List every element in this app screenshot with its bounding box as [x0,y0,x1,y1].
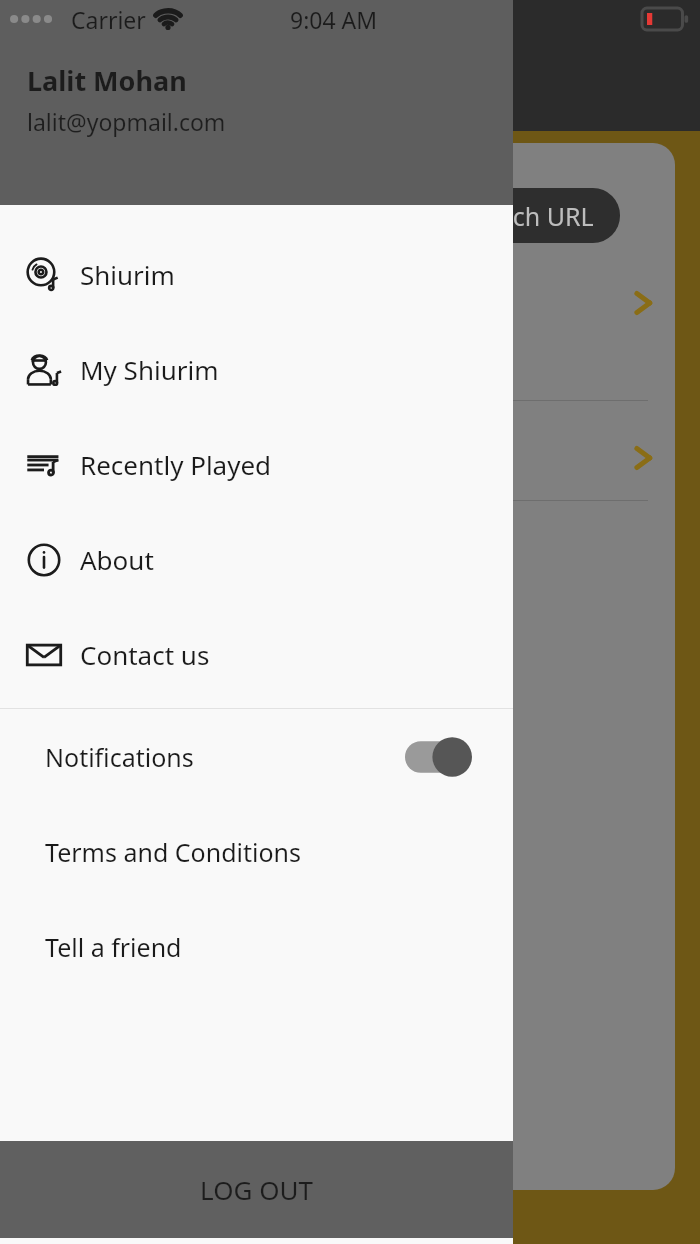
button[interactable]: Terms and Conditions [0,804,513,899]
staticText: 9:04 AM [290,4,378,35]
staticText: My Shiurim [80,352,219,387]
staticText: Lalit Mohan [27,62,187,99]
staticText: Contact us [80,637,210,672]
staticText: About [80,542,154,577]
button[interactable]: About [0,512,513,607]
button[interactable]: Open [20,253,675,353]
button[interactable]: Notifications [0,709,513,804]
button[interactable]: Notifications toggle [405,739,471,775]
button[interactable]: LOG OUT [0,1141,513,1238]
staticText: Recently Played [80,447,272,482]
other: Open [626,441,660,475]
button[interactable]: Open [20,408,675,508]
staticText: Terms and Conditions [45,835,302,869]
button[interactable]: Contact us [0,607,513,702]
staticText: lalit@yopmail.com [27,106,226,137]
staticText: Shiurim [80,257,175,292]
other: Open [626,286,660,320]
staticText: LOG OUT [200,1172,313,1207]
button[interactable]: Tell a friend [0,899,513,994]
staticText: Notifications [45,740,194,774]
button[interactable]: Recently Played [0,417,513,512]
button[interactable]: Search URL [320,188,620,243]
staticText: Tell a friend [45,930,182,964]
staticText: Search URL [461,199,594,233]
button[interactable]: Shiurim [0,227,513,322]
staticText: Carrier [71,4,146,35]
button[interactable]: My Shiurim [0,322,513,417]
